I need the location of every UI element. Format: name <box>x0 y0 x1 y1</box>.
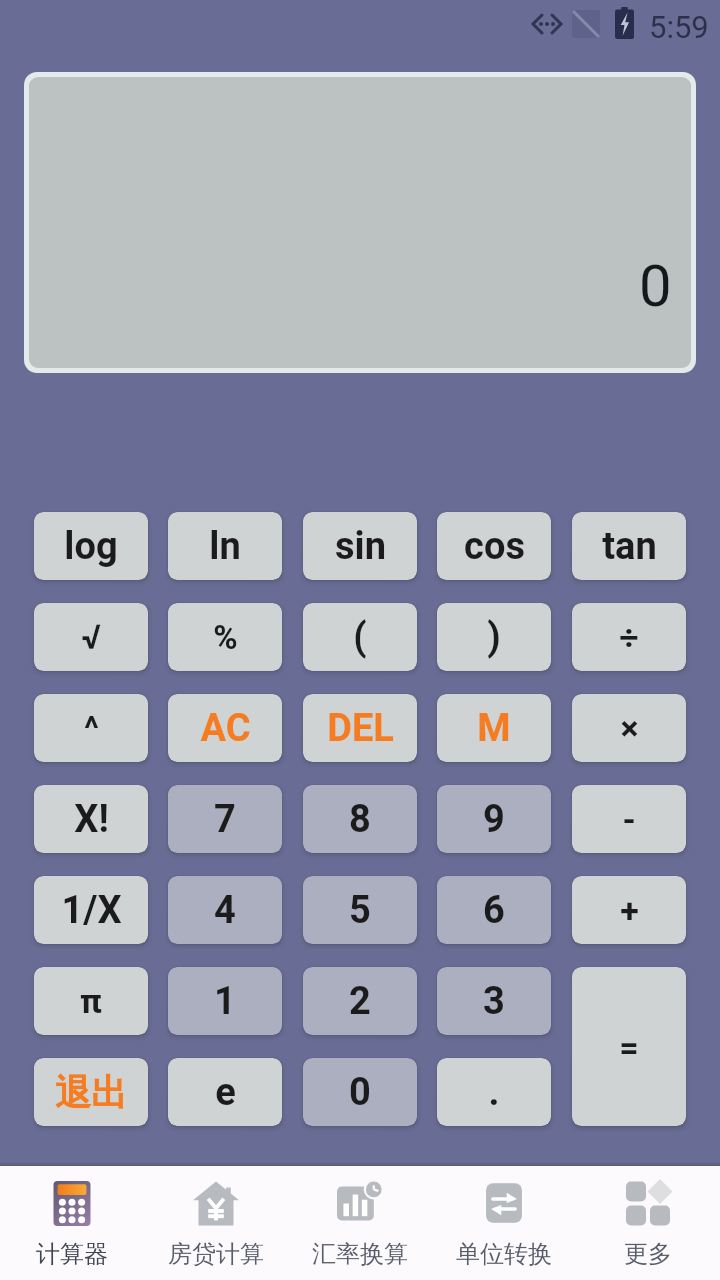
other: Debugging <box>530 12 566 36</box>
staticText: 5:59 <box>649 9 709 45</box>
button[interactable]: cos <box>437 512 551 580</box>
button[interactable]: . <box>437 1058 551 1126</box>
button[interactable]: 2 <box>303 967 417 1035</box>
button[interactable]: ÷ <box>572 603 686 671</box>
button[interactable]: e <box>168 1058 282 1126</box>
staticText: 0 <box>349 1070 371 1115</box>
staticText: 3 <box>483 979 505 1024</box>
staticText: 汇率换算 <box>312 1239 408 1269</box>
button[interactable]: + <box>572 876 686 944</box>
staticText: ln <box>209 524 241 569</box>
staticText: sin <box>335 524 386 569</box>
staticText: 8 <box>349 797 371 842</box>
staticText: 9 <box>483 797 505 842</box>
staticText: ) <box>487 615 501 660</box>
staticText: 6 <box>483 888 505 933</box>
staticText: 0 <box>639 252 672 320</box>
button[interactable]: DEL <box>303 694 417 762</box>
button[interactable]: = <box>572 967 686 1126</box>
staticText: 房贷计算 <box>168 1239 264 1269</box>
staticText: 5 <box>349 888 371 933</box>
staticText: 1/X <box>61 888 122 933</box>
staticText: × <box>620 708 639 748</box>
button[interactable]: 5 <box>303 876 417 944</box>
button[interactable]: ( <box>303 603 417 671</box>
button[interactable]: 退出 <box>34 1058 148 1126</box>
staticText: . <box>488 1070 500 1115</box>
button[interactable]: ^ <box>34 694 148 762</box>
button[interactable]: log <box>34 512 148 580</box>
button[interactable]: 1/X <box>34 876 148 944</box>
staticText: = <box>619 1027 639 1067</box>
staticText: 计算器 <box>36 1239 108 1269</box>
staticText: M <box>477 706 511 751</box>
staticText: DEL <box>327 706 394 751</box>
button[interactable]: 8 <box>303 785 417 853</box>
staticText: e <box>215 1070 236 1115</box>
button[interactable]: 9 <box>437 785 551 853</box>
button[interactable]: - <box>572 785 686 853</box>
button[interactable]: 4 <box>168 876 282 944</box>
other: No SIM card <box>572 10 600 38</box>
staticText: + <box>620 890 639 930</box>
staticText: % <box>213 618 238 657</box>
button[interactable]: ) <box>437 603 551 671</box>
button[interactable]: 汇率换算 <box>288 1166 432 1280</box>
staticText: AC <box>200 706 251 751</box>
staticText: X! <box>74 797 109 842</box>
button[interactable]: 0 <box>303 1058 417 1126</box>
staticText: 4 <box>214 888 236 933</box>
button[interactable]: % <box>168 603 282 671</box>
staticText: log <box>64 524 118 569</box>
staticText: π <box>80 981 102 1021</box>
button[interactable]: sin <box>303 512 417 580</box>
staticText: 7 <box>214 797 236 842</box>
button[interactable]: 单位转换 <box>432 1166 576 1280</box>
button[interactable]: 3 <box>437 967 551 1035</box>
button[interactable]: × <box>572 694 686 762</box>
staticText: 1 <box>214 979 236 1024</box>
staticText: √ <box>81 617 101 657</box>
staticText: - <box>622 799 636 839</box>
button[interactable]: 6 <box>437 876 551 944</box>
button[interactable]: 计算器 <box>0 1166 144 1280</box>
button[interactable]: M <box>437 694 551 762</box>
staticText: 单位转换 <box>456 1239 552 1269</box>
button[interactable]: 更多 <box>576 1166 720 1280</box>
button[interactable]: 1 <box>168 967 282 1035</box>
button[interactable]: tan <box>572 512 686 580</box>
button[interactable]: X! <box>34 785 148 853</box>
button[interactable]: ln <box>168 512 282 580</box>
button[interactable]: 房贷计算 <box>144 1166 288 1280</box>
staticText: tan <box>602 524 657 569</box>
button[interactable]: AC <box>168 694 282 762</box>
staticText: 更多 <box>624 1239 672 1269</box>
staticText: ÷ <box>619 617 639 657</box>
staticText: 2 <box>349 979 371 1024</box>
button[interactable]: π <box>34 967 148 1035</box>
staticText: ^ <box>84 708 99 748</box>
staticText: 退出 <box>55 1070 127 1115</box>
button[interactable]: √ <box>34 603 148 671</box>
other: Battery charging <box>615 7 634 39</box>
button[interactable]: 7 <box>168 785 282 853</box>
staticText: ( <box>353 615 367 660</box>
staticText: cos <box>464 524 525 569</box>
